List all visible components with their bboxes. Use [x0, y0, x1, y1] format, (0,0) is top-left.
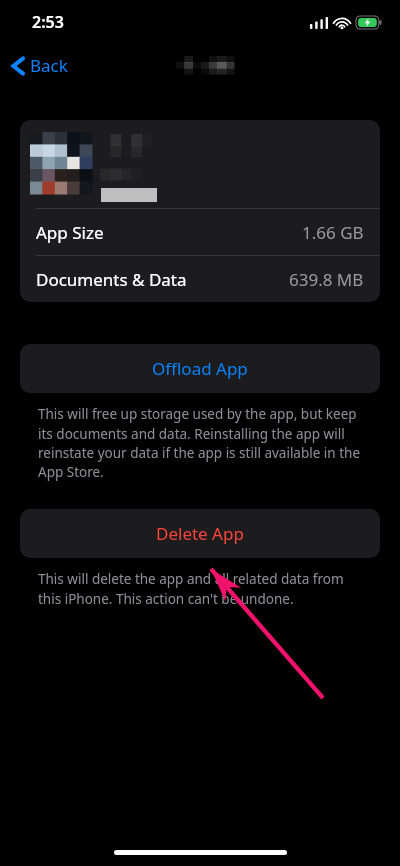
staticText: App Size [36, 221, 104, 244]
staticText: 2:53 [32, 11, 64, 33]
staticText: This will free up storage used by the ap… [38, 405, 362, 481]
staticText: Documents & Data [36, 268, 187, 291]
button[interactable]: Documents & Data [20, 256, 380, 302]
button[interactable]: App Size [20, 209, 380, 255]
button[interactable]: Delete App [20, 509, 380, 558]
button[interactable]: Offload App [20, 344, 380, 393]
staticText: Back [30, 54, 68, 77]
staticText: 639.8 MB [289, 268, 364, 291]
button[interactable]: Back [0, 50, 78, 81]
staticText: Offload App [152, 357, 248, 380]
staticText: 1.66 GB [302, 221, 364, 244]
staticText: Delete App [156, 522, 244, 545]
staticText: This will delete the app and all related… [38, 570, 362, 608]
